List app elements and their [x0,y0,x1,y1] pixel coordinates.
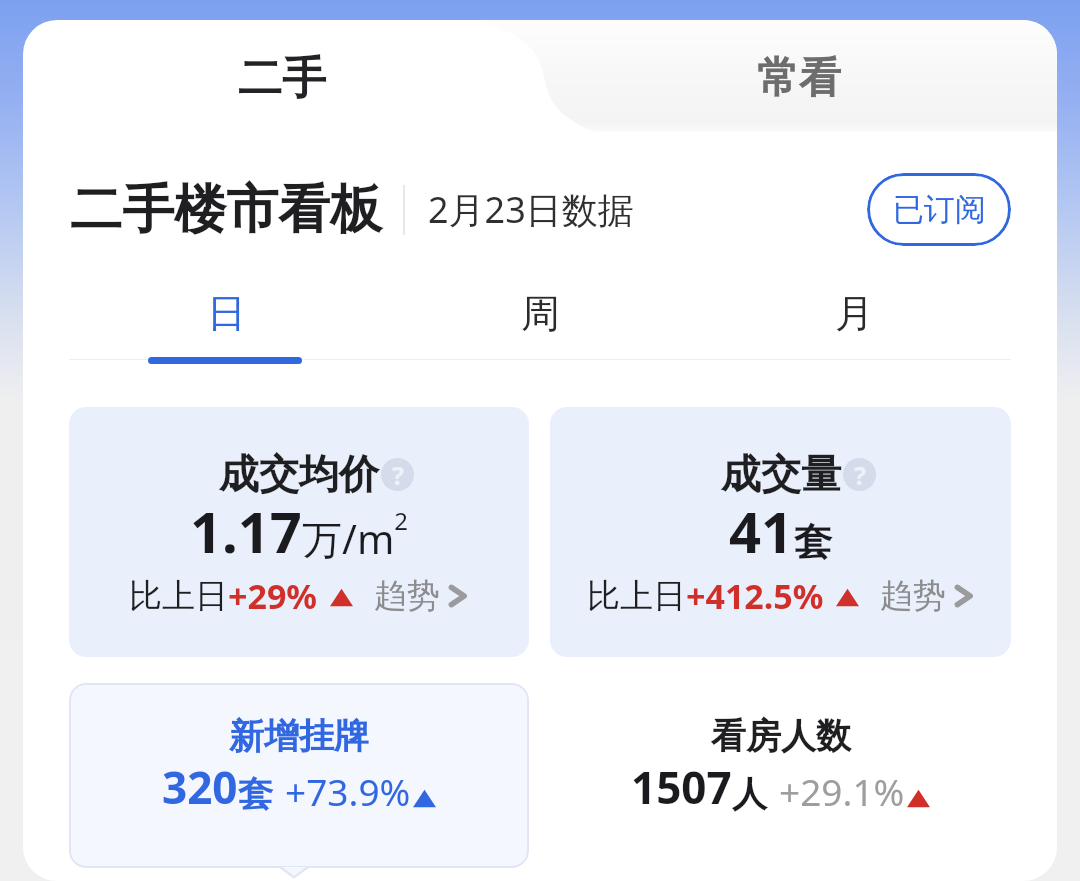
staticText: 万/m2 [302,504,409,566]
staticText: 二手 [238,51,326,106]
staticText: ? [854,458,866,491]
button[interactable]: 已订阅 [867,173,1011,246]
staticText: 成交均价 [219,449,379,499]
staticText: +73.9% [285,766,411,816]
staticText: 常看 [757,52,841,105]
staticText: 已订阅 [893,190,986,229]
button[interactable]: 二手 [23,20,540,130]
button[interactable]: 指标说明 [381,458,414,491]
staticText: 月 [835,289,874,338]
staticText: 1507 [631,757,732,817]
staticText: +412.5% [686,573,824,619]
button[interactable]: 看房人数 [550,683,1011,868]
staticText: 周 [521,289,560,338]
button[interactable]: 指标说明 [843,458,876,491]
button[interactable]: 日 [69,278,383,348]
staticText: ? [392,458,404,491]
staticText: +29.1% [779,766,905,816]
staticText: 比上日 [129,575,228,617]
button[interactable]: 周 [383,278,697,348]
staticText: 日 [207,289,246,338]
staticText: 看房人数 [711,714,851,758]
staticText: +29% [228,573,318,619]
staticText: 趋势 [880,575,946,617]
staticText: 套 [794,518,832,566]
staticText: 2月23日数据 [428,185,634,234]
staticText: 新增挂牌 [229,714,369,758]
staticText: 1.17 [190,493,302,569]
button[interactable]: 常看 [540,20,1057,130]
staticText: 成交量 [721,449,841,499]
staticText: 趋势 [374,575,440,617]
staticText: 320 [162,757,238,817]
button[interactable]: 新增挂牌 [69,683,529,868]
staticText: 二手楼市看板 [70,177,382,243]
button[interactable]: 月 [697,278,1011,348]
staticText: 比上日 [587,575,686,617]
button[interactable]: 成交均价 [69,407,529,657]
staticText: 41 [729,493,794,569]
button[interactable]: 成交量 [550,407,1011,657]
staticText: 人 [732,772,767,816]
staticText: 套 [238,772,273,816]
